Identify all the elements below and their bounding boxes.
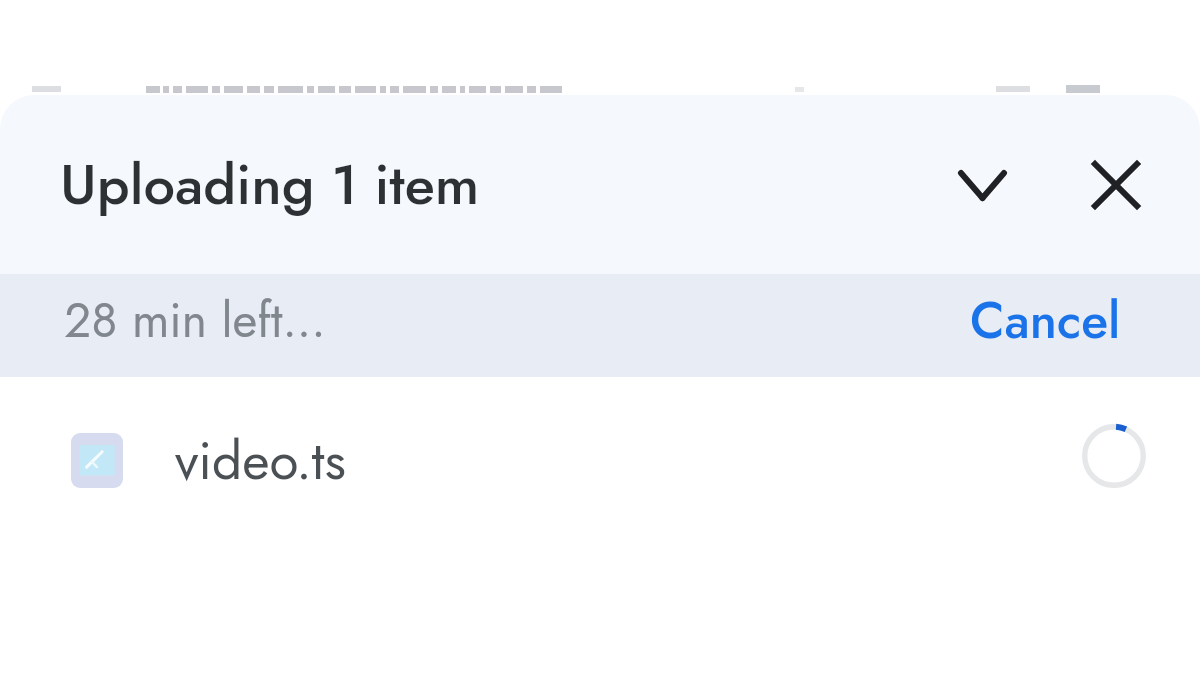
staticText: Uploading 1 item: [60, 144, 480, 225]
button[interactable]: video.ts: [0, 377, 1200, 543]
button[interactable]: Close: [1070, 139, 1162, 231]
button[interactable]: Cancel: [964, 276, 1127, 364]
staticText: Cancel: [970, 284, 1121, 356]
button[interactable]: Collapse: [936, 139, 1028, 231]
staticText: 28 min left...: [64, 286, 326, 355]
staticText: video.ts: [175, 422, 346, 499]
